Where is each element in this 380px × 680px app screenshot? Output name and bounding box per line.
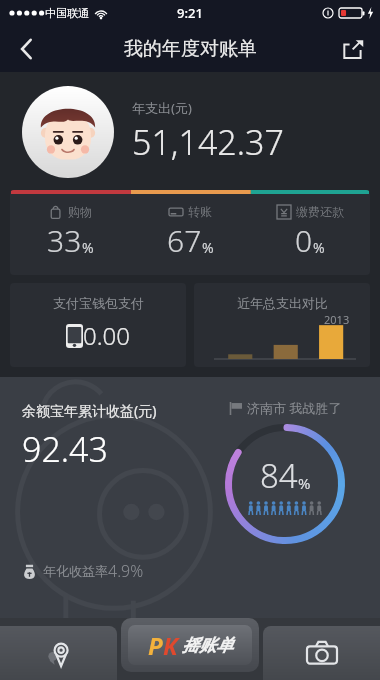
staticText: % — [202, 238, 214, 257]
staticText: 33 — [47, 220, 82, 261]
staticText: 购物 — [68, 204, 92, 219]
staticText: P — [148, 629, 163, 662]
staticText: 0.00 — [83, 319, 130, 352]
button[interactable]: 转账 — [130, 204, 250, 261]
button[interactable]: Location — [0, 626, 117, 680]
staticText: 84 — [260, 453, 298, 498]
staticText: 中国联通 — [45, 6, 89, 20]
staticText: 92.43 — [22, 426, 108, 472]
staticText: 我的年度对账单 — [124, 37, 257, 61]
staticText: 51,142.37 — [132, 119, 284, 165]
button[interactable]: 购物 — [10, 204, 130, 261]
staticText: 近年总支出对比 — [237, 295, 328, 311]
button[interactable]: Camera — [263, 626, 380, 680]
button[interactable]: 近年总支出对比 — [194, 283, 370, 367]
staticText: 4.9% — [108, 560, 144, 582]
button[interactable]: 缴费还款 — [250, 204, 370, 261]
button[interactable]: 支付宝钱包支付 — [10, 283, 186, 367]
staticText: 济南市 我战胜了 — [247, 399, 342, 417]
button[interactable]: P — [128, 625, 252, 665]
staticText: % — [313, 238, 325, 257]
staticText: 67 — [167, 220, 202, 261]
staticText: 缴费还款 — [296, 204, 344, 219]
staticText: 年化收益率 — [43, 563, 108, 579]
staticText: 0 — [295, 220, 313, 261]
staticText: % — [82, 238, 94, 257]
staticText: 摇账单 — [182, 635, 233, 656]
staticText: 9:21 — [177, 4, 203, 22]
button[interactable]: Share — [328, 26, 380, 72]
staticText: 支付宝钱包支付 — [53, 295, 144, 311]
staticText: 年支出(元) — [132, 99, 192, 117]
staticText: 转账 — [188, 204, 212, 219]
button[interactable]: Back — [0, 26, 52, 72]
staticText: % — [298, 473, 311, 493]
staticText: 2013 — [324, 312, 350, 327]
staticText: 余额宝年累计收益(元) — [22, 401, 157, 420]
staticText: K — [163, 629, 178, 662]
